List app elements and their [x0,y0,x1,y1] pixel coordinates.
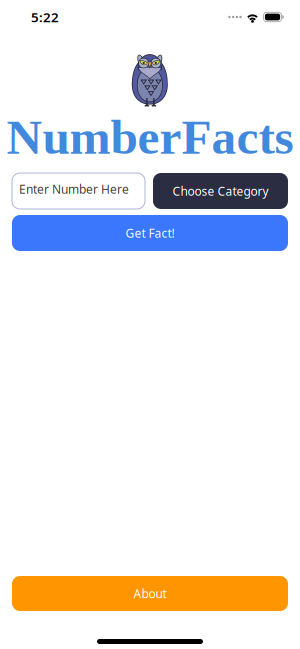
staticText: 5:22 [31,8,59,26]
button[interactable]: Enter Number Here [12,173,145,209]
button[interactable]: Get Fact! [12,215,288,251]
button[interactable]: Choose Category [153,173,288,209]
staticText: About [133,585,166,601]
staticText: Enter Number Here [19,181,129,197]
staticText: Get Fact! [125,225,174,241]
staticText: Choose Category [172,183,268,199]
button[interactable]: About [12,576,288,611]
staticText: NumberFacts [6,110,293,164]
